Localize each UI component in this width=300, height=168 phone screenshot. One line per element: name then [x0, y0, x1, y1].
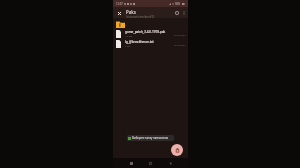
- staticText: ..: [125, 22, 127, 27]
- staticText: 28.08.2023: [174, 44, 186, 47]
- button[interactable]: Выберите папку назначения: [127, 135, 174, 141]
- button[interactable]: lg_@knockhman.txt: [113, 39, 188, 49]
- staticText: Выберите папку назначения: [132, 136, 169, 140]
- staticText: 1.4 GB: [125, 35, 133, 38]
- staticText: 12:07: [116, 2, 123, 6]
- staticText: Paks: [126, 9, 136, 15]
- staticText: 58%: [175, 2, 181, 6]
- button[interactable]: Home: [147, 160, 154, 167]
- button[interactable]: Recents: [128, 160, 135, 167]
- staticText: /storage/emulated/0/Download/Paks: [126, 15, 165, 18]
- button[interactable]: Info: [173, 9, 180, 16]
- button[interactable]: ..: [113, 19, 188, 29]
- staticText: game_patch_3.4.0.1918.pak: [125, 30, 166, 34]
- staticText: 30.08.2023: [174, 34, 186, 37]
- button[interactable]: More options: [181, 10, 186, 15]
- staticText: lg_@knockhman.txt: [125, 40, 154, 44]
- staticText: 2 KB: [125, 45, 130, 48]
- button[interactable]: game_patch_3.4.0.1918.pak: [113, 29, 188, 39]
- button[interactable]: Back: [167, 160, 174, 167]
- button[interactable]: Paste: [171, 144, 183, 156]
- button[interactable]: Close: [116, 10, 122, 16]
